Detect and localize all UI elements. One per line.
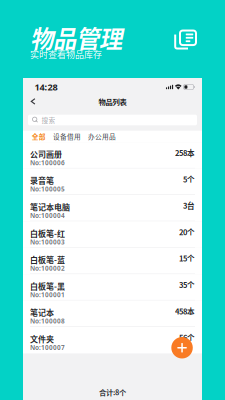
staticText: No:100005: [30, 185, 65, 193]
staticText: 物品管理: [30, 20, 122, 54]
staticText: 公司画册: [30, 148, 62, 160]
staticText: 实时查看物品库存: [30, 47, 102, 60]
staticText: 合计:8个: [99, 387, 126, 397]
staticText: 办公用品: [88, 132, 116, 141]
button[interactable]: 办公用品: [88, 132, 116, 141]
button[interactable]: 笔记本: [23, 301, 202, 327]
staticText: No:100004: [30, 211, 65, 220]
staticText: 笔记本电脑: [30, 201, 70, 213]
button[interactable]: 录音笔: [23, 169, 202, 195]
button[interactable]: 白板笔-红: [23, 221, 202, 248]
staticText: No:100001: [30, 290, 65, 299]
staticText: 文件夹: [30, 333, 54, 345]
staticText: 搜索: [42, 115, 56, 125]
staticText: No:100007: [30, 343, 65, 352]
button[interactable]: Back: [26, 94, 40, 108]
staticText: 35个: [179, 279, 195, 290]
staticText: 全部: [32, 132, 46, 141]
staticText: 设备借用: [53, 132, 81, 141]
staticText: 白板笔-黑: [30, 280, 65, 292]
button[interactable]: 笔记本电脑: [23, 195, 202, 221]
button[interactable]: 设备借用: [53, 132, 81, 141]
staticText: 258本: [175, 147, 195, 158]
staticText: 白板笔-红: [30, 227, 65, 239]
button[interactable]: 全部: [32, 132, 46, 141]
staticText: No:100006: [30, 158, 65, 167]
staticText: 笔记本: [30, 307, 54, 318]
button[interactable]: 公司画册: [23, 142, 202, 169]
staticText: No:100008: [30, 317, 65, 325]
button[interactable]: 文件夹: [23, 327, 202, 353]
staticText: 录音笔: [30, 175, 54, 186]
staticText: 物品列表: [98, 96, 126, 107]
staticText: 白板笔-蓝: [30, 254, 65, 265]
staticText: 5个: [183, 174, 195, 185]
staticText: 3台: [183, 200, 195, 211]
staticText: 15个: [179, 253, 195, 264]
button[interactable]: Add item: [171, 337, 193, 358]
button[interactable]: 白板笔-黑: [23, 274, 202, 301]
staticText: 458本: [175, 306, 195, 317]
staticText: 20个: [179, 226, 195, 237]
button[interactable]: 白板笔-蓝: [23, 248, 202, 274]
staticText: 56个: [179, 332, 195, 343]
staticText: No:100003: [30, 237, 65, 246]
staticText: No:100002: [30, 264, 65, 273]
button[interactable]: 搜索: [28, 115, 197, 125]
staticText: 14:28: [34, 81, 57, 93]
